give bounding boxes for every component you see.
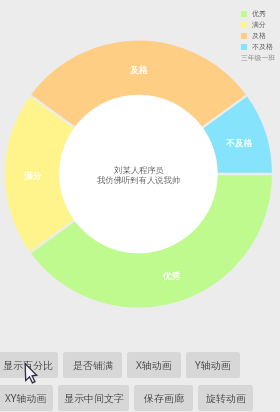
- staticText: 我仿佛听到有人说我帅: [97, 175, 180, 185]
- button[interactable]: Y轴动画: [186, 352, 240, 378]
- button[interactable]: 保存画廊: [134, 385, 193, 411]
- staticText: 保存画廊: [144, 392, 184, 405]
- button[interactable]: 显示中间文字: [58, 385, 129, 411]
- staticText: X轴动画: [136, 358, 172, 372]
- button[interactable]: XY轴动画: [0, 385, 53, 411]
- staticText: 优秀: [163, 271, 181, 282]
- button[interactable]: 旋转动画: [198, 385, 253, 411]
- staticText: 及格: [130, 65, 148, 76]
- staticText: Y轴动画: [195, 358, 231, 372]
- button[interactable]: X轴动画: [127, 352, 181, 378]
- staticText: 刘某人程序员: [114, 165, 164, 175]
- staticText: 不及格: [226, 138, 253, 149]
- staticText: 及格: [252, 31, 266, 40]
- staticText: 三年级一班: [241, 53, 275, 62]
- staticText: 显示中间文字: [64, 392, 124, 405]
- staticText: 优秀: [252, 9, 266, 18]
- staticText: 满分: [24, 171, 42, 182]
- staticText: XY轴动画: [5, 391, 47, 405]
- staticText: 是否铺满: [73, 359, 113, 372]
- staticText: 显示百分比: [3, 359, 53, 372]
- button[interactable]: 是否铺满: [63, 352, 122, 378]
- staticText: 满分: [252, 20, 266, 29]
- staticText: 旋转动画: [206, 392, 246, 405]
- staticText: 不及格: [252, 42, 273, 51]
- button[interactable]: 显示百分比: [0, 352, 58, 378]
